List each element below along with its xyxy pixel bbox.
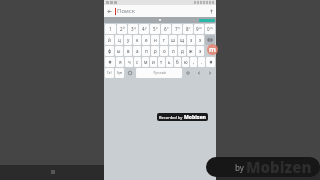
button[interactable]: Cursor right — [205, 68, 215, 78]
button[interactable]: Shift — [105, 57, 115, 67]
button[interactable]: Ctrl — [105, 68, 114, 78]
staticText: 8 — [186, 26, 189, 32]
button[interactable]: ю — [182, 57, 189, 67]
staticText: т — [160, 59, 163, 65]
staticText: ш — [171, 37, 176, 43]
staticText: Mobizen — [184, 114, 206, 121]
button[interactable]: 5 — [150, 24, 160, 34]
button[interactable]: ф — [105, 46, 114, 56]
staticText: э — [199, 48, 202, 54]
button[interactable]: е — [142, 35, 150, 45]
button[interactable]: Emoji — [125, 68, 135, 78]
button[interactable]: р — [151, 46, 159, 56]
button[interactable]: Search — [205, 46, 215, 56]
staticText: б — [176, 59, 179, 65]
button[interactable]: 8 — [183, 24, 193, 34]
staticText: ю — [184, 59, 188, 65]
staticText: Sym — [117, 71, 123, 75]
staticText: Mobizen — [246, 157, 312, 177]
button[interactable]: щ — [178, 35, 186, 45]
button[interactable]: у — [124, 35, 132, 45]
button[interactable]: 2 — [117, 24, 127, 34]
button[interactable]: . — [198, 57, 205, 67]
button[interactable]: 0 — [205, 24, 215, 34]
staticText: ш — [199, 26, 202, 30]
button[interactable]: х — [196, 35, 204, 45]
button[interactable]: 3 — [128, 24, 138, 34]
button[interactable]: ж — [187, 46, 195, 56]
staticText: л — [172, 48, 175, 54]
button[interactable]: Shift — [206, 57, 215, 67]
button[interactable]: о — [160, 46, 168, 56]
button[interactable]: я — [116, 57, 124, 67]
staticText: й — [123, 26, 125, 30]
staticText: 6 — [164, 26, 167, 32]
staticText: 2 — [120, 26, 123, 32]
button[interactable]: п — [142, 46, 150, 56]
button[interactable]: б — [174, 57, 181, 67]
button[interactable]: Cursor left — [194, 68, 204, 78]
staticText: ч — [128, 59, 131, 65]
button[interactable]: э — [196, 46, 204, 56]
button[interactable]: г — [160, 35, 168, 45]
button[interactable]: 1 — [105, 24, 116, 34]
button[interactable]: Mobizen recorder — [207, 44, 218, 55]
button[interactable]: 9 — [194, 24, 204, 34]
staticText: г — [189, 26, 191, 30]
button[interactable]: ы — [115, 46, 123, 56]
button[interactable]: й — [105, 35, 114, 45]
staticText: н — [178, 26, 180, 30]
staticText: с — [136, 59, 139, 65]
button[interactable]: л — [169, 46, 177, 56]
staticText: й — [108, 37, 111, 43]
staticText: Русский — [153, 71, 166, 75]
staticText: д — [181, 48, 184, 54]
button[interactable]: 4 — [139, 24, 149, 34]
button[interactable]: з — [187, 35, 195, 45]
button[interactable]: в — [124, 46, 132, 56]
button[interactable]: ц — [115, 35, 123, 45]
staticText: к — [136, 37, 139, 43]
button[interactable]: м — [142, 57, 149, 67]
button[interactable]: ш — [169, 35, 177, 45]
button[interactable] — [199, 19, 215, 22]
staticText: я — [119, 59, 122, 65]
button[interactable]: 6 — [161, 24, 171, 34]
staticText: , — [193, 59, 195, 65]
staticText: у — [145, 26, 147, 30]
staticText: 7 — [175, 26, 178, 32]
staticText: у — [127, 37, 130, 43]
button[interactable]: и — [150, 57, 157, 67]
staticText: 9 — [196, 26, 199, 32]
staticText: Поиск — [117, 7, 135, 15]
button[interactable]: к — [133, 35, 141, 45]
staticText: ц — [118, 37, 121, 43]
button[interactable]: д — [178, 46, 186, 56]
staticText: 0 — [207, 26, 210, 32]
staticText: 1 — [109, 26, 112, 32]
staticText: е — [145, 37, 148, 43]
button[interactable]: т — [158, 57, 165, 67]
button[interactable]: Sym — [115, 68, 124, 78]
staticText: п — [145, 48, 148, 54]
staticText: m — [209, 45, 216, 55]
button[interactable]: ь — [166, 57, 173, 67]
staticText: м — [144, 59, 148, 65]
staticText: by — [235, 162, 246, 173]
button[interactable]: , — [190, 57, 197, 67]
staticText: в — [127, 48, 130, 54]
staticText: о — [163, 48, 166, 54]
staticText: ф — [108, 48, 112, 54]
button[interactable]: Voice search — [206, 6, 216, 16]
button[interactable]: Settings — [183, 68, 193, 78]
button[interactable]: с — [134, 57, 141, 67]
button[interactable]: Русский — [136, 68, 182, 78]
button[interactable]: ч — [125, 57, 133, 67]
button[interactable]: Backspace — [205, 35, 215, 45]
button[interactable]: Back — [104, 6, 114, 16]
button[interactable]: 7 — [172, 24, 182, 34]
button[interactable]: а — [133, 46, 141, 56]
button[interactable]: н — [151, 35, 159, 45]
staticText: ь — [168, 59, 171, 65]
staticText: р — [154, 48, 157, 54]
